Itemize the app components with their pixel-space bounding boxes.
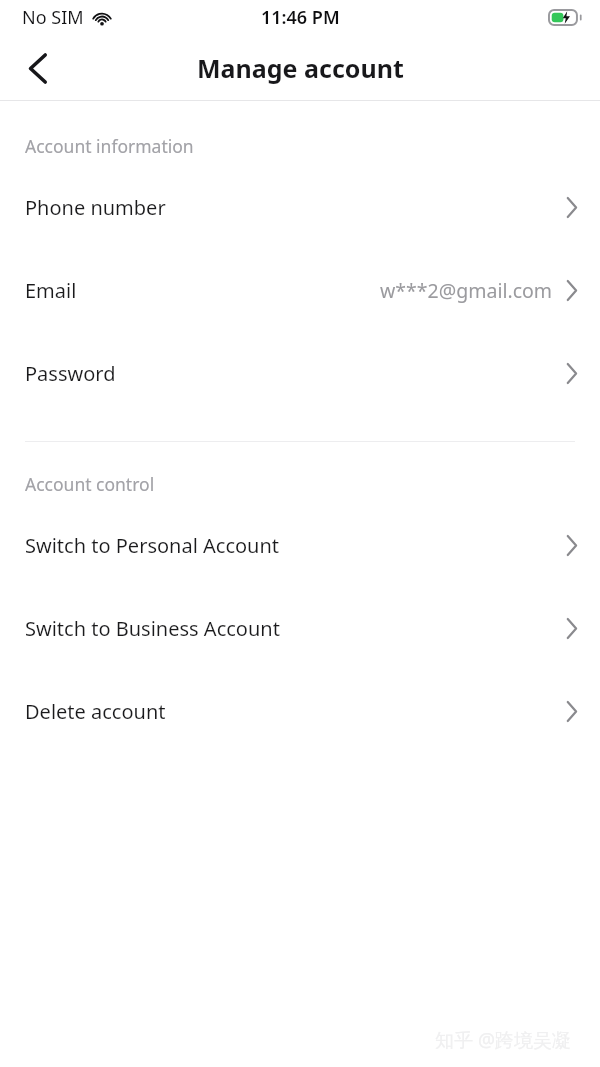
- button[interactable]: Delete account: [0, 670, 600, 753]
- button[interactable]: Back: [12, 42, 64, 94]
- staticText: Switch to Business Account: [25, 615, 280, 642]
- staticText: Account control: [25, 472, 155, 496]
- button[interactable]: Password: [0, 332, 600, 415]
- button[interactable]: Phone number: [0, 166, 600, 249]
- staticText: Switch to Personal Account: [25, 532, 280, 559]
- staticText: Manage account: [197, 51, 404, 85]
- staticText: No SIM: [22, 5, 84, 30]
- staticText: 11:46 PM: [261, 5, 340, 30]
- staticText: Delete account: [25, 698, 166, 725]
- staticText: Phone number: [25, 194, 166, 221]
- staticText: w***2@gmail.com: [380, 277, 553, 304]
- button[interactable]: Email: [0, 249, 600, 332]
- staticText: Email: [25, 277, 77, 304]
- button[interactable]: Switch to Business Account: [0, 587, 600, 670]
- staticText: Password: [25, 360, 116, 387]
- staticText: Account information: [25, 134, 194, 158]
- staticText: 知乎 @跨境吴凝: [435, 1027, 572, 1053]
- button[interactable]: Switch to Personal Account: [0, 504, 600, 587]
